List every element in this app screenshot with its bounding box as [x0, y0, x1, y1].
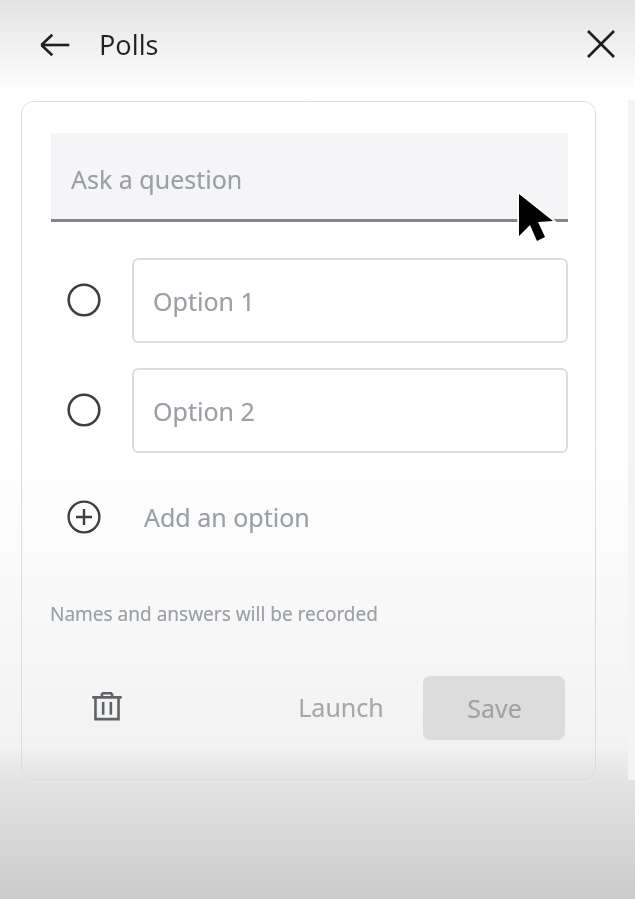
staticText: Names and answers will be recorded [50, 601, 378, 627]
button[interactable]: Save [423, 676, 565, 740]
staticText: Save [467, 691, 522, 725]
staticText: Polls [99, 26, 159, 63]
staticText: Option 2 [153, 394, 255, 428]
button[interactable]: Back [28, 18, 82, 72]
staticText: Add an option [144, 500, 310, 534]
button[interactable]: Option 1 [67, 252, 575, 348]
staticText: Launch [298, 690, 384, 724]
staticText: Option 1 [153, 284, 255, 318]
button[interactable]: Close [575, 18, 627, 70]
button[interactable]: Option 2 [67, 362, 575, 458]
button[interactable]: Launch [276, 681, 406, 733]
button[interactable]: Delete [81, 681, 133, 733]
button[interactable]: Add an option [67, 491, 397, 543]
staticText: Ask a question [71, 162, 243, 196]
button[interactable]: Ask a question [51, 133, 568, 221]
